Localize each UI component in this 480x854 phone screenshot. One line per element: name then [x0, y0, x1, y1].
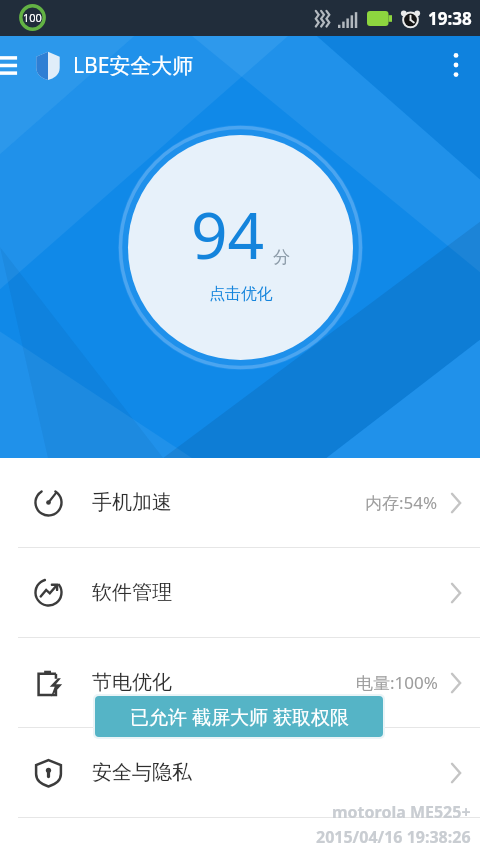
staticText: 2015/04/16 19:38:26: [316, 826, 471, 848]
button[interactable]: More options: [432, 38, 480, 92]
button[interactable]: 安全与隐私: [0, 728, 480, 817]
staticText: 内存:54%: [365, 491, 438, 514]
staticText: 节电优化: [92, 670, 172, 695]
staticText: motorola ME525+: [332, 801, 471, 823]
button[interactable]: 软件管理: [0, 548, 480, 637]
staticText: 电量:100%: [356, 671, 438, 694]
staticText: 19:38: [428, 7, 472, 30]
staticText: 安全与隐私: [92, 760, 192, 785]
staticText: 已允许 截屏大师 获取权限: [130, 704, 349, 730]
staticText: 手机加速: [92, 490, 172, 515]
staticText: 分: [273, 247, 290, 268]
button[interactable]: 94: [118, 125, 363, 370]
button[interactable]: 节电优化: [0, 638, 480, 727]
button[interactable]: 手机加速: [0, 458, 480, 547]
staticText: 点击优化: [209, 284, 273, 304]
staticText: LBE安全大师: [73, 51, 194, 80]
staticText: 软件管理: [92, 580, 172, 605]
button[interactable]: Menu: [0, 39, 30, 91]
staticText: 94: [191, 191, 265, 278]
staticText: 100: [23, 10, 42, 25]
